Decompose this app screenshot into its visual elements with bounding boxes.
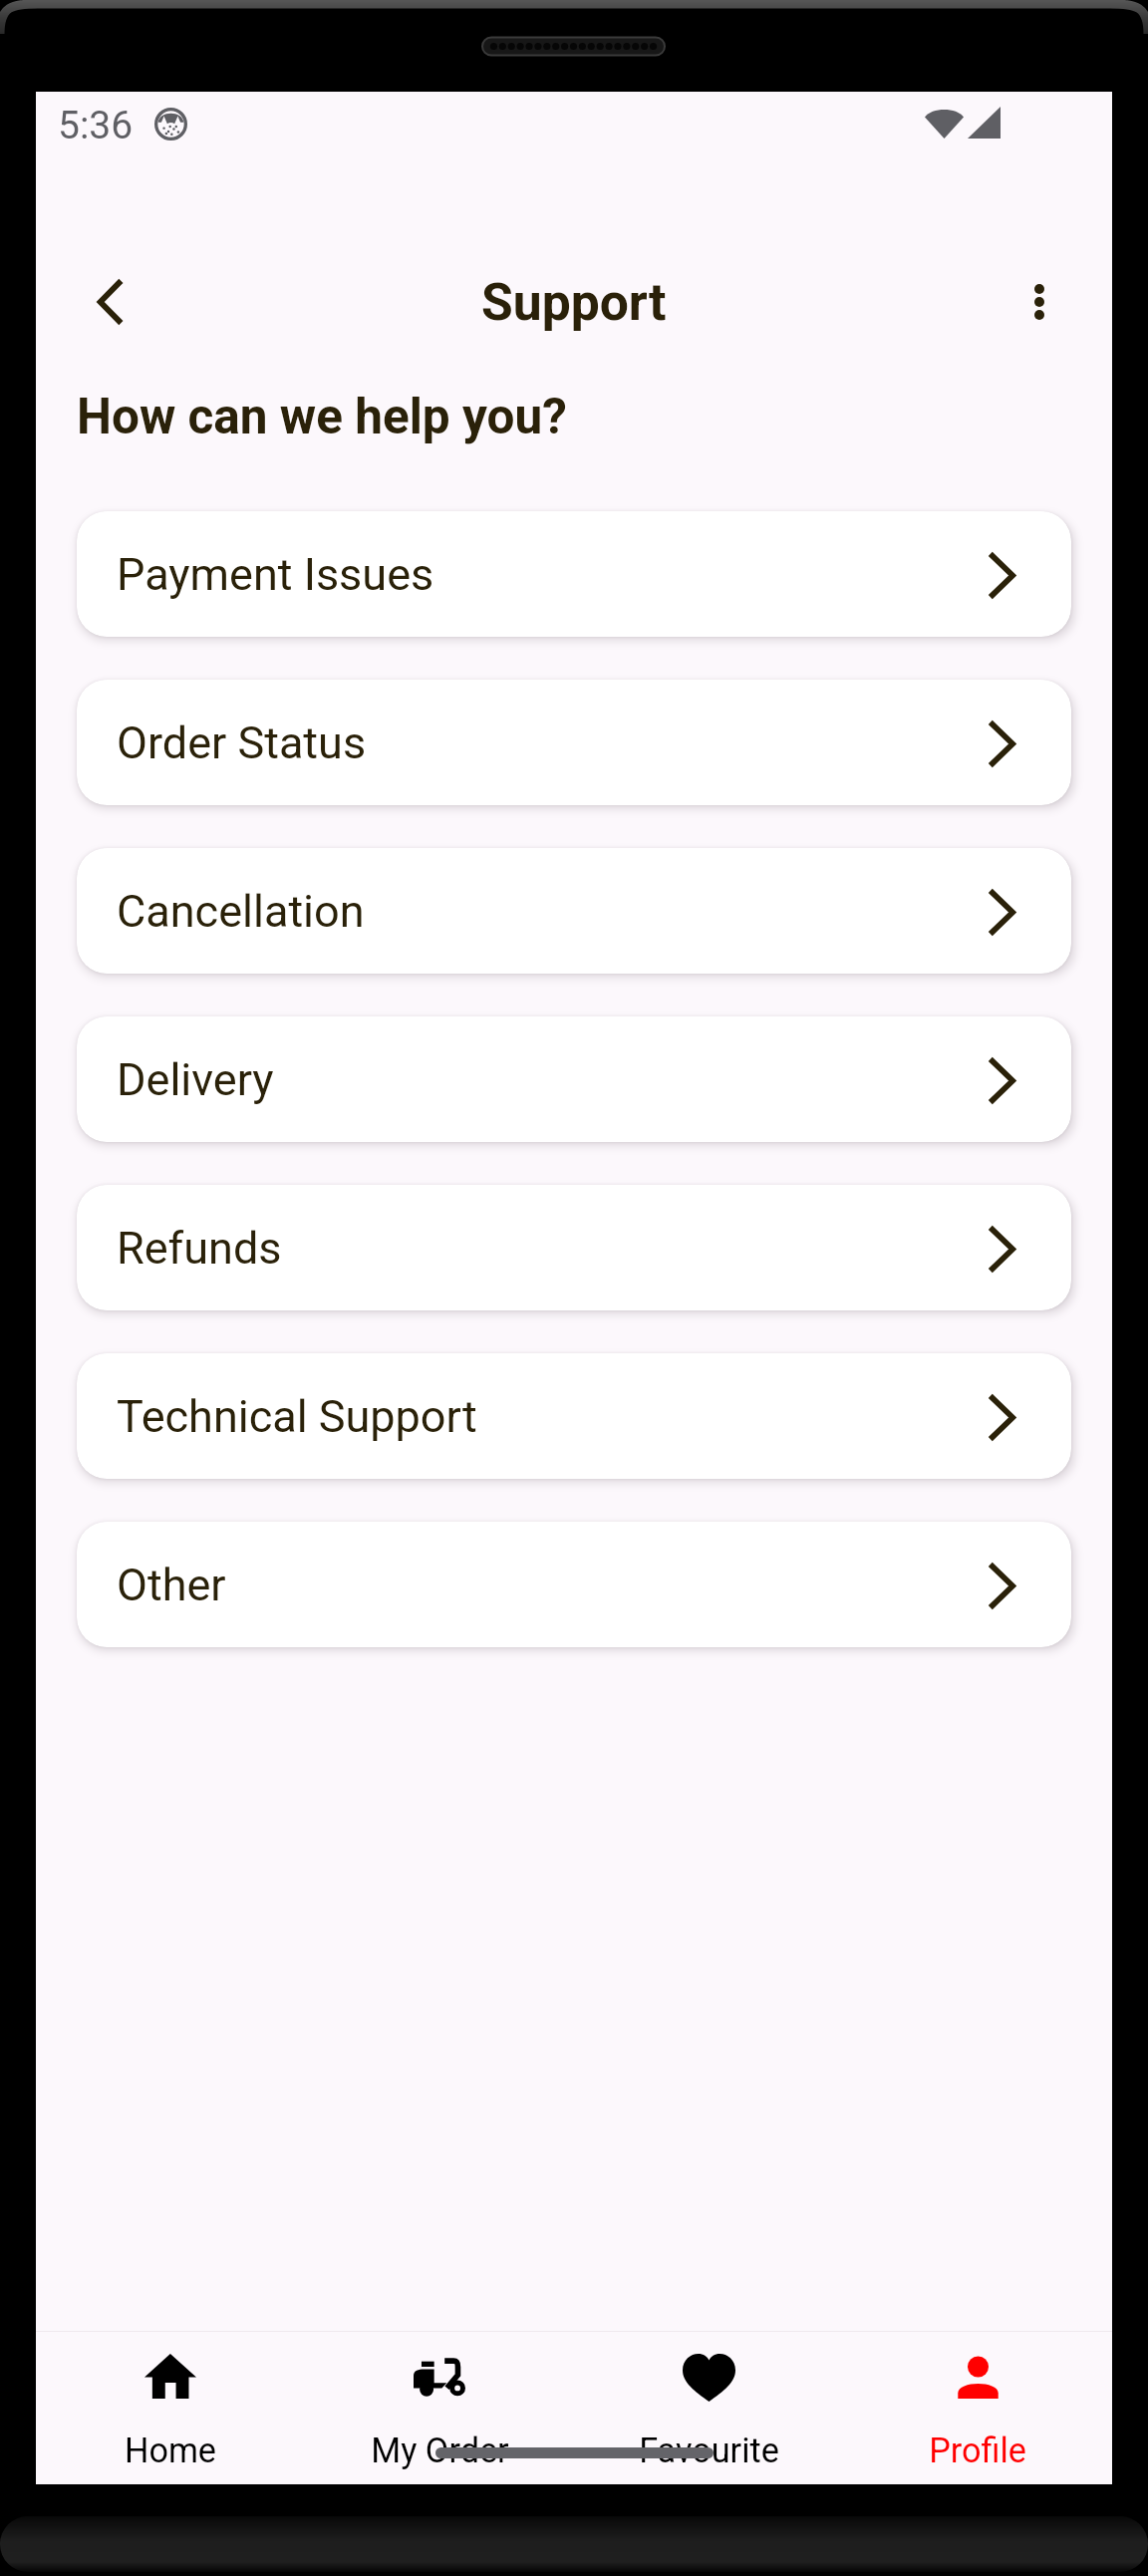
button[interactable]: Technical Support [77, 1353, 1071, 1479]
button[interactable]: Delivery [77, 1016, 1071, 1142]
button[interactable]: More options [977, 239, 1102, 365]
button[interactable]: Favourite [574, 2331, 843, 2484]
staticText: Favourite [639, 2431, 779, 2470]
staticText: Cancellation [117, 885, 365, 938]
button[interactable]: Refunds [77, 1185, 1071, 1310]
staticText: 5:36 [58, 103, 134, 148]
staticText: Support [481, 272, 667, 332]
staticText: Home [125, 2431, 216, 2470]
staticText: Profile [929, 2431, 1026, 2470]
staticText: Payment Issues [117, 548, 434, 601]
staticText: Delivery [117, 1053, 274, 1106]
button[interactable]: Profile [843, 2331, 1112, 2484]
button[interactable]: Payment Issues [77, 511, 1071, 637]
button[interactable]: Other [77, 1522, 1071, 1647]
button[interactable]: Cancellation [77, 848, 1071, 974]
staticText: Technical Support [117, 1390, 477, 1443]
staticText: My Order [371, 2431, 509, 2470]
button[interactable]: My Order [305, 2331, 574, 2484]
staticText: How can we help you? [77, 388, 567, 445]
staticText: Refunds [117, 1222, 282, 1275]
staticText: Other [117, 1559, 226, 1611]
staticText: Order Status [117, 716, 367, 769]
button[interactable]: Home [36, 2331, 305, 2484]
button[interactable]: Back [47, 239, 172, 365]
button[interactable]: Order Status [77, 680, 1071, 805]
